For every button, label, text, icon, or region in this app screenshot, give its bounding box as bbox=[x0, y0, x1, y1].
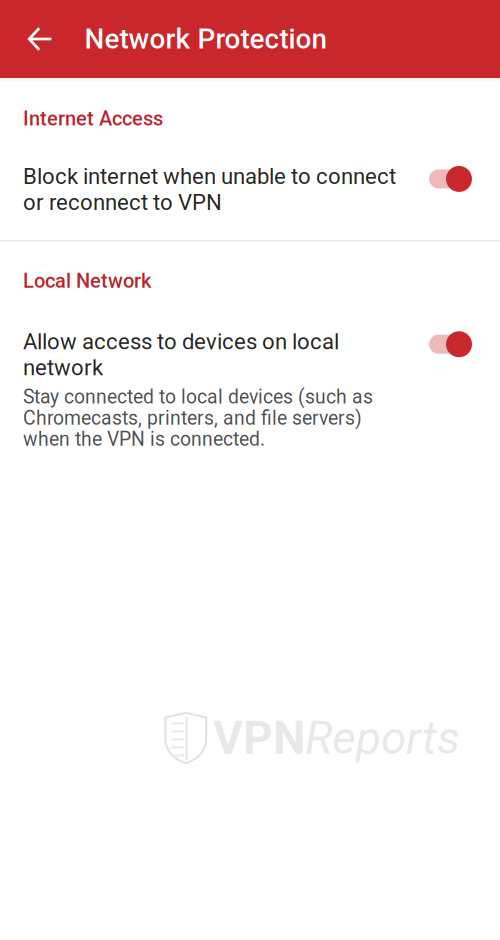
staticText: Reports bbox=[305, 711, 460, 765]
button[interactable]: Block internet when unable to connect or… bbox=[0, 163, 500, 215]
button[interactable]: Allow access to devices on local network bbox=[0, 329, 500, 450]
staticText: VPN bbox=[213, 711, 305, 765]
staticText: Allow access to devices on local network bbox=[23, 329, 339, 381]
staticText: Network Protection bbox=[84, 23, 327, 55]
staticText: Internet Access bbox=[23, 107, 163, 130]
staticText: Local Network bbox=[23, 269, 151, 293]
button[interactable]: Back bbox=[0, 0, 84, 78]
staticText: Block internet when unable to connect or… bbox=[23, 163, 396, 215]
staticText: Stay connected to local devices (such as… bbox=[23, 386, 373, 451]
